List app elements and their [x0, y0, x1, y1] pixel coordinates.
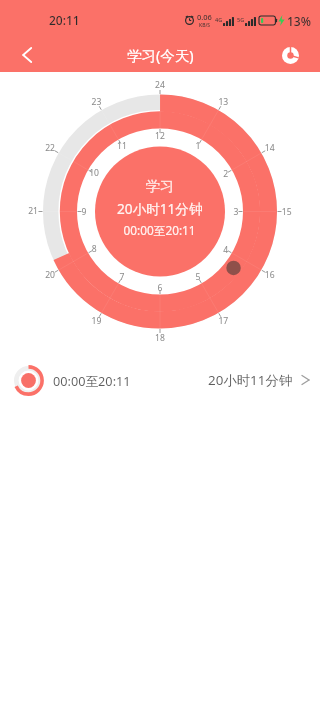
staticText: 5G	[237, 16, 245, 23]
staticText: 4G	[215, 16, 223, 23]
staticText: 0.06	[197, 12, 212, 22]
staticText: 学习(今天)	[127, 45, 194, 65]
button[interactable]: 00:00至20:11	[0, 358, 320, 402]
staticText: 13%	[287, 13, 311, 29]
staticText: 00:00至20:11	[53, 372, 131, 389]
button[interactable]: Back	[0, 40, 53, 70]
staticText: KB/S	[199, 22, 211, 29]
staticText: 20小时11分钟	[208, 371, 293, 389]
button[interactable]: Statistics	[277, 42, 303, 68]
staticText: 20:11	[49, 12, 80, 28]
